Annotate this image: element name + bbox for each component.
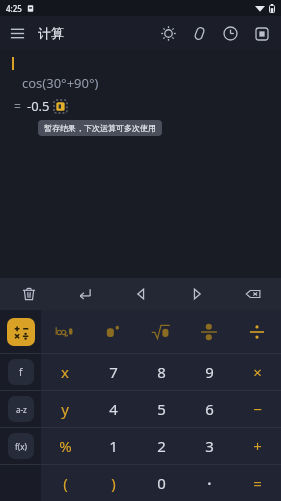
button[interactable]: Units	[246, 18, 277, 49]
button[interactable]: Square root	[137, 310, 185, 353]
staticText: =	[14, 98, 21, 114]
button[interactable]: −	[233, 391, 281, 427]
staticText: ·	[207, 471, 212, 496]
button[interactable]: 9	[185, 354, 233, 390]
button[interactable]: Move left	[113, 278, 169, 310]
button[interactable]: %	[41, 428, 89, 464]
staticText: 5	[157, 399, 166, 419]
button[interactable]: 6	[185, 391, 233, 427]
button[interactable]: 5	[137, 391, 185, 427]
staticText: 7	[109, 362, 118, 382]
staticText: -0.5	[27, 97, 50, 115]
button[interactable]: a-z	[0, 391, 41, 427]
staticText: f	[19, 365, 23, 379]
staticText: 9	[205, 362, 214, 382]
button[interactable]: y	[41, 391, 89, 427]
staticText: 暂存结果，下次运算可多次使用	[44, 123, 156, 133]
button[interactable]: )	[89, 465, 137, 501]
staticText: 4	[109, 399, 118, 419]
staticText: x	[61, 362, 69, 382]
button[interactable]: Divide	[233, 310, 281, 353]
staticText: a-z	[16, 404, 27, 415]
staticText: 0	[157, 473, 166, 493]
staticText: %	[59, 436, 72, 456]
staticText: (	[63, 473, 68, 493]
button[interactable]: x	[41, 354, 89, 390]
button[interactable]: (	[41, 465, 89, 501]
button[interactable]: Fraction	[185, 310, 233, 353]
staticText: cos(30°+90°)	[22, 74, 99, 92]
button[interactable]: Shape	[184, 18, 215, 49]
staticText: )	[111, 473, 116, 493]
button[interactable]: 2	[137, 428, 185, 464]
button[interactable]: 7	[89, 354, 137, 390]
staticText: y	[61, 399, 69, 419]
button[interactable]: Operators	[0, 310, 41, 353]
button[interactable]: f	[0, 354, 41, 390]
button[interactable]: Power	[89, 310, 137, 353]
staticText: 3	[205, 436, 214, 456]
staticText: 1	[109, 436, 118, 456]
staticText: ×	[253, 362, 262, 382]
button[interactable]: f(x)	[0, 428, 41, 464]
button[interactable]: =	[233, 465, 281, 501]
button[interactable]: History	[215, 18, 246, 49]
button[interactable]: +	[233, 428, 281, 464]
button[interactable]: Theme	[153, 18, 184, 49]
staticText: 4:25	[6, 3, 22, 14]
button[interactable]: Move right	[169, 278, 225, 310]
button[interactable]: Backspace	[225, 278, 281, 310]
button[interactable]: ·	[185, 465, 233, 501]
button[interactable]: Logarithm	[41, 310, 89, 353]
button[interactable]: 1	[89, 428, 137, 464]
button[interactable]: Clear	[0, 278, 57, 310]
button[interactable]: 0	[137, 465, 185, 501]
button[interactable]: 3	[185, 428, 233, 464]
button[interactable]: 8	[137, 354, 185, 390]
staticText: −	[253, 399, 262, 419]
staticText: +	[253, 436, 262, 456]
button[interactable]: ×	[233, 354, 281, 390]
staticText: 2	[157, 436, 166, 456]
staticText: =	[253, 473, 262, 493]
button[interactable]: Enter	[57, 278, 113, 310]
staticText: 8	[157, 362, 166, 382]
button[interactable]: Menu	[0, 16, 34, 50]
button[interactable]: Stored result	[54, 100, 67, 113]
staticText: 计算	[38, 25, 64, 41]
staticText: f(x)	[15, 441, 27, 452]
button[interactable]: 4	[89, 391, 137, 427]
staticText: 6	[205, 399, 214, 419]
